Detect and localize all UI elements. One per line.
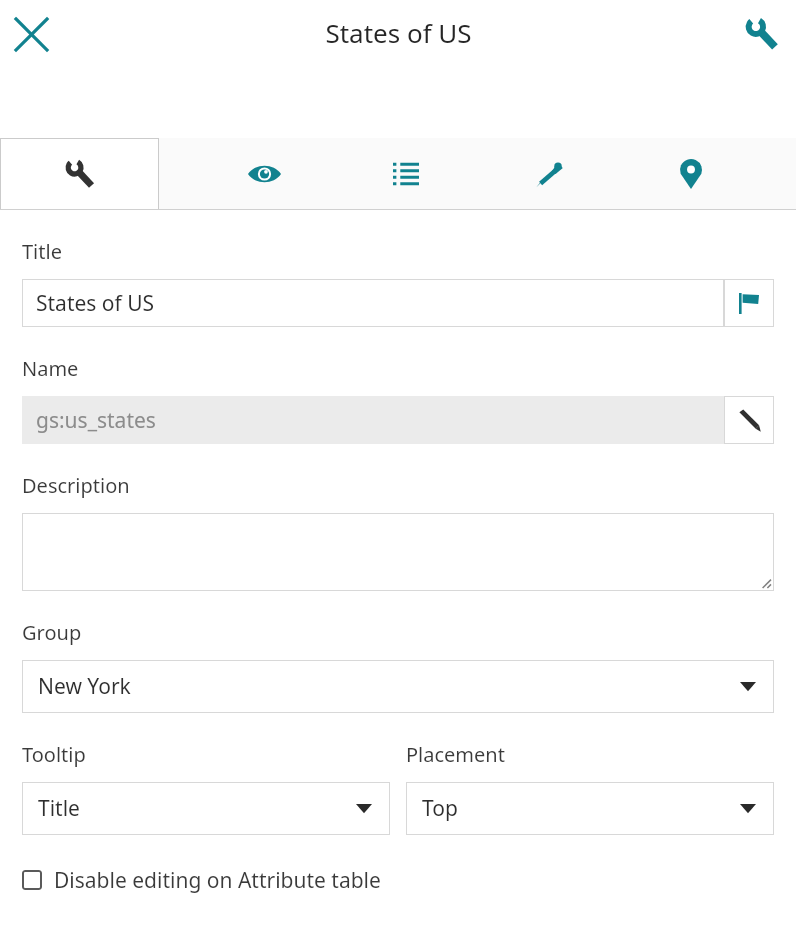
- staticText: Disable editing on Attribute table: [54, 866, 381, 895]
- staticText: States of US: [325, 15, 472, 50]
- button[interactable]: Title: [22, 782, 390, 835]
- button[interactable]: Disable editing on Attribute table: [22, 861, 774, 899]
- staticText: Name: [22, 355, 79, 382]
- button[interactable]: [22, 513, 774, 591]
- staticText: gs:us_states: [36, 406, 156, 435]
- staticText: Description: [22, 472, 130, 499]
- staticText: States of US: [36, 289, 155, 318]
- staticText: Group: [22, 619, 82, 646]
- staticText: Title: [38, 794, 80, 823]
- button[interactable]: gs:us_states: [22, 396, 724, 444]
- staticText: New York: [38, 672, 131, 701]
- staticText: Title: [22, 238, 62, 265]
- button[interactable]: Settings: [736, 8, 788, 60]
- button[interactable]: New York: [22, 660, 774, 713]
- button[interactable]: Properties: [0, 138, 159, 210]
- button[interactable]: States of US: [22, 279, 724, 327]
- staticText: Tooltip: [22, 741, 86, 768]
- button[interactable]: Fields: [369, 138, 443, 210]
- button[interactable]: Top: [406, 782, 774, 835]
- button[interactable]: Style: [512, 138, 586, 210]
- staticText: Top: [422, 794, 458, 823]
- button[interactable]: Close: [6, 9, 56, 59]
- button[interactable]: Location: [654, 138, 728, 210]
- button[interactable]: Edit name: [724, 396, 774, 444]
- button[interactable]: Translate title: [724, 279, 774, 327]
- button[interactable]: Visibility: [227, 138, 301, 210]
- staticText: Placement: [406, 741, 505, 768]
